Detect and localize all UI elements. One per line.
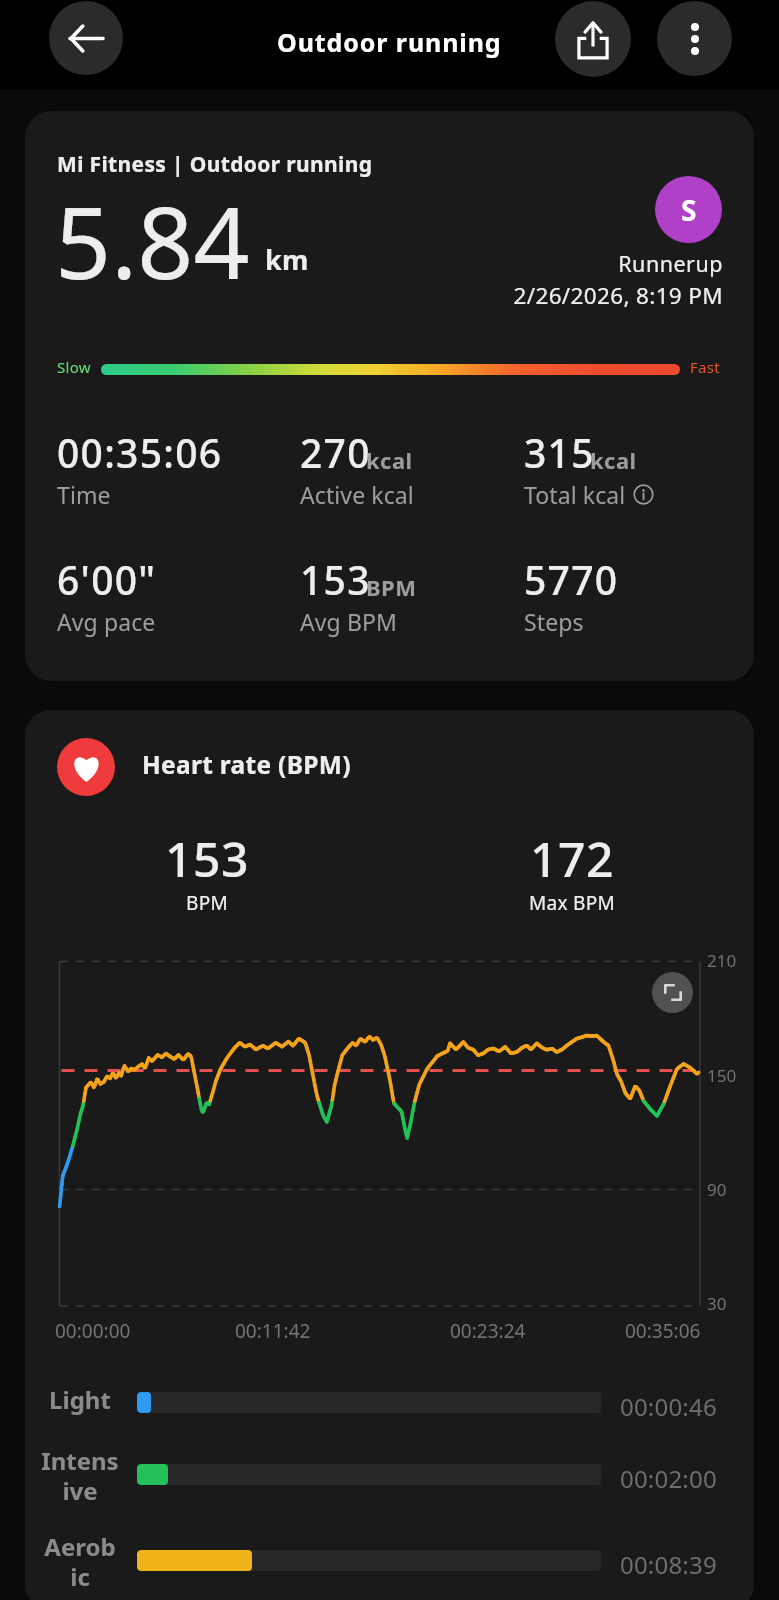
staticText: 00:23:24 (450, 1318, 526, 1344)
staticText: BPM (132, 890, 282, 916)
staticText: Aerob ic (32, 1530, 128, 1593)
staticText: S (681, 191, 697, 229)
staticText: Fast (690, 357, 721, 377)
staticText: 172 (497, 826, 647, 891)
staticText: 5770 (524, 553, 619, 606)
button[interactable]: Back (49, 1, 123, 75)
button[interactable]: Expand chart (652, 972, 693, 1013)
staticText: 150 (707, 1064, 737, 1087)
staticText: Avg BPM (300, 606, 397, 637)
staticText: 210 (707, 949, 737, 972)
staticText: 00:00:46 (620, 1390, 717, 1423)
staticText: Active kcal (300, 479, 414, 510)
staticText: 153 (132, 826, 282, 891)
staticText: 00:35:06 (625, 1318, 701, 1344)
staticText: 00:35:06 (57, 426, 223, 479)
staticText: 30 (707, 1292, 727, 1315)
staticText: Heart rate (BPM) (142, 748, 351, 781)
staticText: Total kcal (524, 479, 626, 510)
staticText: Mi Fitness | Outdoor running (57, 150, 373, 179)
staticText: Intens ive (32, 1444, 128, 1507)
staticText: 6'00" (57, 553, 157, 606)
staticText: 315 (524, 426, 595, 479)
staticText: km (265, 241, 309, 278)
staticText: Runnerup (523, 249, 723, 278)
staticText: 270 (300, 426, 371, 479)
staticText: Steps (524, 606, 584, 637)
staticText: 2/26/2026, 8:19 PM (473, 280, 723, 311)
staticText: 90 (707, 1178, 727, 1201)
staticText: Avg pace (57, 606, 156, 637)
staticText: Time (57, 479, 111, 510)
staticText: 00:08:39 (620, 1548, 717, 1581)
button[interactable]: More options (657, 1, 732, 76)
staticText: 00:00:00 (55, 1318, 131, 1344)
staticText: kcal (366, 445, 413, 475)
staticText: Light (32, 1383, 128, 1416)
staticText: 153 (300, 553, 371, 606)
staticText: kcal (590, 445, 637, 475)
staticText: 00:11:42 (235, 1318, 311, 1344)
button[interactable]: Share (555, 1, 631, 77)
staticText: Slow (57, 357, 91, 377)
staticText: BPM (366, 572, 417, 602)
staticText: Max BPM (497, 890, 647, 916)
staticText: 00:02:00 (620, 1462, 717, 1495)
staticText: 5.84 (55, 174, 250, 307)
staticText: Outdoor running (277, 25, 502, 59)
